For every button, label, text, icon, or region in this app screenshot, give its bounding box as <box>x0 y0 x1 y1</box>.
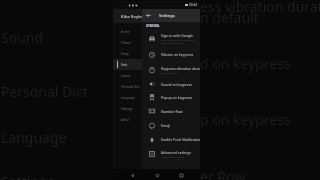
button[interactable]: Sign-in with Google <box>142 29 200 48</box>
staticText: Sound <box>121 74 131 78</box>
staticText: Number Row <box>161 109 183 114</box>
staticText: GENERAL <box>146 24 160 28</box>
staticText: Sign In To Back Up & Restore Personal Di… <box>161 38 195 45</box>
staticText: Advanced settings <box>161 150 192 155</box>
staticText: Home <box>121 30 130 34</box>
button[interactable]: Settings <box>113 103 142 114</box>
staticText: Sound <box>1 28 44 47</box>
button[interactable]: Home <box>152 170 162 180</box>
staticText: Options for experts <box>161 155 184 158</box>
staticText: 00:44 <box>189 3 198 7</box>
staticText: Keypress vibration duration <box>161 66 200 71</box>
button[interactable]: Language <box>113 92 142 103</box>
staticText: Language <box>121 96 136 100</box>
button[interactable]: Popup on keypress <box>142 90 200 104</box>
staticText: Emoji <box>121 52 129 56</box>
staticText: Settings <box>121 107 133 111</box>
button[interactable]: Back <box>142 9 154 22</box>
staticText: System default <box>161 71 179 74</box>
staticText: Theme <box>121 41 131 45</box>
staticText: Language <box>1 128 67 147</box>
staticText: Sound on keypress <box>161 82 193 87</box>
button[interactable]: Number Row <box>142 104 200 118</box>
staticText: About <box>121 118 130 122</box>
button[interactable]: Recents <box>176 170 186 180</box>
staticText: Sign-in with Google <box>161 33 194 38</box>
button[interactable]: Sound <box>113 70 142 81</box>
button[interactable]: Back <box>127 170 137 180</box>
button[interactable]: Keypress vibration duration <box>142 61 200 78</box>
staticText: Kika Keyboard <box>121 14 142 19</box>
button[interactable]: Home <box>113 26 142 37</box>
button[interactable]: Advanced settings <box>142 146 200 161</box>
staticText: Settings <box>159 13 175 18</box>
staticText: d on keypress <box>200 54 291 73</box>
button[interactable]: Emoji <box>142 118 200 133</box>
button[interactable]: Font <box>113 59 142 70</box>
staticText: Emoji <box>161 123 171 128</box>
button[interactable]: Emoji <box>113 48 142 59</box>
button[interactable]: Theme <box>113 37 142 48</box>
staticText: Personal Dict <box>1 82 88 101</box>
staticText: Personal Dict <box>121 85 140 89</box>
button[interactable]: About <box>113 114 142 125</box>
staticText: Settings <box>1 172 55 180</box>
staticText: Font <box>121 63 128 67</box>
staticText: p on keypress <box>200 110 291 129</box>
staticText: Enable Push Notification <box>161 137 200 142</box>
button[interactable]: Sound on keypress <box>142 78 200 90</box>
staticText: er Row <box>200 167 246 180</box>
staticText: Popup on keypress <box>161 95 193 100</box>
button[interactable]: Enable Push Notification <box>142 133 200 146</box>
button[interactable]: Personal Dict <box>113 81 142 92</box>
staticText: ess vibration durat <box>200 0 320 16</box>
button[interactable]: Vibrate on keypress <box>142 48 200 61</box>
staticText: Vibrate on keypress <box>161 52 194 57</box>
staticText: n default <box>200 8 259 27</box>
